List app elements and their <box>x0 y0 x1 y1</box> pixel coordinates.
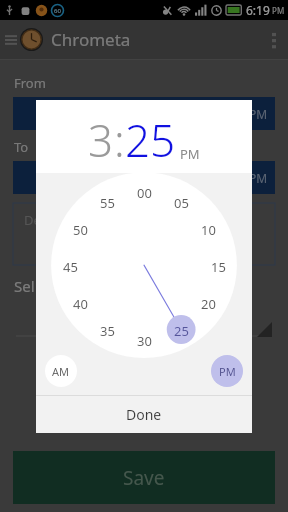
staticText: 45 <box>63 258 78 276</box>
button[interactable]: Save <box>13 451 275 504</box>
button[interactable]: Open navigation drawer <box>0 29 22 51</box>
staticText: 00 <box>137 184 152 202</box>
staticText: PM <box>249 106 268 122</box>
staticText: De <box>24 211 41 229</box>
button[interactable]: Done <box>36 396 252 433</box>
staticText: 35 <box>100 322 115 340</box>
button[interactable]: De <box>13 203 275 265</box>
button[interactable]: 3 <box>88 110 114 170</box>
staticText: To <box>14 138 29 156</box>
staticText: 20 <box>201 295 216 313</box>
staticText: 55 <box>100 194 115 212</box>
staticText: Save <box>123 465 165 491</box>
staticText: 30 <box>137 332 152 350</box>
staticText: Done <box>126 405 162 424</box>
staticText: 05 <box>174 194 189 212</box>
staticText: 40 <box>73 295 88 313</box>
staticText: 25 <box>174 322 189 340</box>
staticText: 60 <box>54 7 61 15</box>
staticText: Sel <box>14 276 35 296</box>
staticText: From <box>14 74 46 92</box>
staticText: PM <box>219 364 236 379</box>
staticText: 15 <box>211 258 226 276</box>
staticText: PM <box>270 5 285 16</box>
staticText: Chrometa <box>51 28 131 51</box>
staticText: AM <box>52 364 70 379</box>
button[interactable]: AM <box>45 355 77 387</box>
button[interactable]: PM <box>13 97 275 130</box>
staticText: PM <box>249 170 268 186</box>
button[interactable]: PM <box>13 161 275 194</box>
staticText: 50 <box>73 221 88 239</box>
staticText: 10 <box>201 221 216 239</box>
staticText: : <box>114 110 125 170</box>
button[interactable]: 25 <box>125 110 176 170</box>
button[interactable]: PM <box>211 355 243 387</box>
staticText: PM <box>180 145 200 163</box>
button[interactable]: More options <box>260 26 288 54</box>
button[interactable]: T <box>16 305 272 337</box>
staticText: 6:19 <box>246 2 270 18</box>
